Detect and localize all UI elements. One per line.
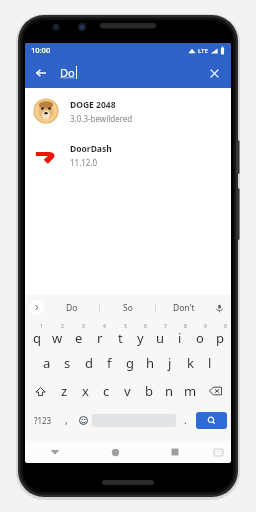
button[interactable]: Emoji <box>74 407 92 433</box>
staticText: q <box>33 329 41 347</box>
button[interactable]: Don't <box>156 295 211 320</box>
button[interactable]: f <box>99 349 120 377</box>
staticText: h <box>146 354 155 372</box>
staticText: ?123 <box>34 415 52 426</box>
staticText: n <box>165 382 174 400</box>
staticText: 8 <box>184 323 187 330</box>
staticText: So <box>123 302 133 314</box>
button[interactable]: Back <box>30 62 52 84</box>
staticText: 5 <box>124 323 127 330</box>
staticText: 6 <box>144 323 147 330</box>
staticText: a <box>43 354 51 372</box>
staticText: m <box>184 382 197 400</box>
staticText: c <box>103 382 110 400</box>
button[interactable]: m <box>180 377 201 405</box>
button[interactable]: Clear search <box>203 62 225 84</box>
staticText: z <box>61 382 68 400</box>
staticText: . <box>184 413 187 427</box>
button[interactable]: , <box>58 407 74 433</box>
staticText: 1 <box>40 323 43 330</box>
button[interactable]: Shift <box>26 377 54 405</box>
staticText: 0 <box>224 323 227 330</box>
button[interactable]: b <box>138 377 159 405</box>
staticText: DOGE 2048 <box>70 99 116 111</box>
staticText: 2 <box>61 323 64 330</box>
button[interactable]: Recent apps <box>145 441 205 463</box>
button[interactable]: 3 <box>68 321 89 349</box>
button[interactable]: Switch keyboard <box>205 441 231 463</box>
button[interactable]: DoorDash <box>25 138 231 172</box>
staticText: t <box>118 329 123 347</box>
staticText: r <box>97 329 103 347</box>
button[interactable]: l <box>200 349 220 377</box>
button[interactable]: . <box>176 407 194 433</box>
button[interactable]: x <box>75 377 96 405</box>
staticText: Don't <box>173 302 195 314</box>
button[interactable]: Home <box>85 441 145 463</box>
staticText: w <box>52 329 63 347</box>
button[interactable]: z <box>54 377 75 405</box>
button[interactable]: More suggestions <box>29 300 44 315</box>
button[interactable]: Back <box>25 441 85 463</box>
staticText: j <box>168 354 172 372</box>
staticText: 11.12.0 <box>70 157 98 168</box>
button[interactable]: 0 <box>210 321 230 349</box>
button[interactable]: 4 <box>89 321 110 349</box>
staticText: y <box>137 329 144 347</box>
button[interactable]: 5 <box>110 321 130 349</box>
button[interactable]: ?123 <box>27 407 58 433</box>
button[interactable]: s <box>57 349 78 377</box>
staticText: 4 <box>103 323 106 330</box>
staticText: b <box>145 382 153 400</box>
button[interactable]: d <box>78 349 99 377</box>
button[interactable]: So <box>100 295 155 320</box>
staticText: , <box>65 413 68 427</box>
staticText: 9 <box>204 323 207 330</box>
button[interactable]: Voice input <box>211 300 227 316</box>
staticText: v <box>124 382 131 400</box>
button[interactable]: Backspace <box>201 377 230 405</box>
button[interactable]: g <box>120 349 140 377</box>
staticText: 7 <box>164 323 167 330</box>
button[interactable]: DOGE 2048 <box>25 94 231 128</box>
button[interactable]: k <box>180 349 200 377</box>
staticText: 3 <box>82 323 85 330</box>
staticText: Do <box>66 302 78 314</box>
button[interactable]: n <box>159 377 180 405</box>
button[interactable]: 7 <box>150 321 170 349</box>
button[interactable]: j <box>160 349 180 377</box>
staticText: e <box>75 329 83 347</box>
button[interactable]: h <box>140 349 160 377</box>
button[interactable]: 1 <box>26 321 47 349</box>
staticText: o <box>196 329 204 347</box>
staticText: p <box>216 329 224 347</box>
button[interactable]: 8 <box>170 321 190 349</box>
staticText: u <box>156 329 165 347</box>
button[interactable]: Do <box>44 295 99 320</box>
staticText: DoorDash <box>70 143 112 155</box>
button[interactable]: Search <box>196 412 227 429</box>
button[interactable]: 2 <box>47 321 68 349</box>
button[interactable]: v <box>117 377 138 405</box>
staticText: 3.0.3-bewildered <box>70 113 133 124</box>
staticText: i <box>178 329 182 347</box>
button[interactable]: a <box>36 349 57 377</box>
button[interactable]: 6 <box>130 321 150 349</box>
staticText: f <box>107 354 112 372</box>
button[interactable]: c <box>96 377 117 405</box>
staticText: LTE <box>198 47 208 55</box>
staticText: s <box>64 354 71 372</box>
staticText: l <box>208 354 212 372</box>
staticText: d <box>85 354 93 372</box>
staticText: Do <box>60 65 75 80</box>
button[interactable]: 9 <box>190 321 210 349</box>
staticText: x <box>82 382 89 400</box>
staticText: 10:00 <box>31 45 51 55</box>
staticText: g <box>126 354 134 372</box>
staticText: k <box>187 354 194 372</box>
